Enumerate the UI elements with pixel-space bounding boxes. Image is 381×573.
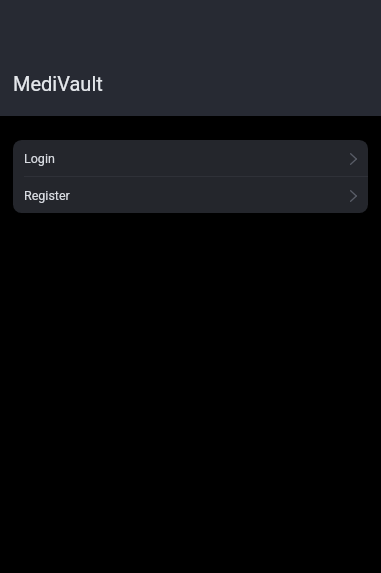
other: Open Register [350, 189, 357, 201]
staticText: Login [24, 151, 55, 166]
button[interactable]: Login [13, 140, 368, 176]
staticText: MediVault [13, 72, 103, 95]
button[interactable]: Register [13, 177, 368, 213]
other: Open Login [350, 152, 357, 164]
staticText: Register [24, 188, 70, 203]
